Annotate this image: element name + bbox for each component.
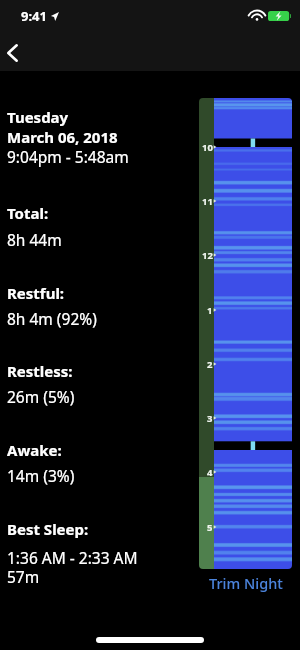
staticText: 11 bbox=[202, 195, 213, 208]
staticText: Best Sleep: bbox=[7, 519, 89, 539]
staticText: Total: bbox=[7, 203, 49, 223]
staticText: March 06, 2018 bbox=[7, 127, 118, 147]
staticText: 14m (3%) bbox=[7, 465, 75, 486]
button[interactable]: Back bbox=[0, 33, 32, 72]
staticText: 9:04pm - 5:48am bbox=[7, 146, 129, 167]
button[interactable]: Trim Night bbox=[199, 572, 292, 594]
staticText: 3 bbox=[207, 412, 213, 425]
staticText: 2 bbox=[207, 358, 213, 371]
staticText: Restless: bbox=[7, 361, 73, 381]
staticText: 57m bbox=[7, 566, 40, 587]
staticText: 26m (5%) bbox=[7, 386, 75, 407]
staticText: 12 bbox=[202, 249, 213, 262]
staticText: 10 bbox=[202, 141, 213, 154]
staticText: 8h 4m (92%) bbox=[7, 308, 97, 329]
staticText: 4 bbox=[207, 466, 213, 479]
staticText: 5 bbox=[207, 521, 213, 534]
staticText: 1 bbox=[207, 304, 213, 317]
staticText: Restful: bbox=[7, 283, 65, 303]
staticText: Trim Night bbox=[209, 573, 283, 593]
staticText: Awake: bbox=[7, 440, 62, 460]
staticText: Tuesday bbox=[7, 107, 69, 127]
staticText: 1:36 AM - 2:33 AM bbox=[7, 547, 138, 568]
staticText: 9:41 bbox=[21, 7, 47, 25]
staticText: 8h 44m bbox=[7, 229, 62, 250]
